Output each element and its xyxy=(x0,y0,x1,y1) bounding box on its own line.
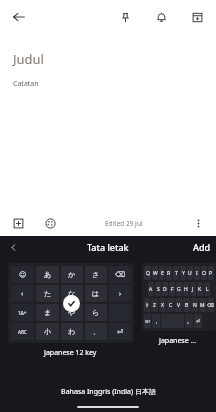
staticText: ⌫ xyxy=(115,271,125,279)
button[interactable]: Archive xyxy=(184,4,210,30)
staticText: W xyxy=(153,270,158,277)
staticText: C xyxy=(169,302,173,309)
button[interactable]: Q xyxy=(142,263,216,331)
staticText: ま xyxy=(44,308,52,317)
staticText: ⇧ xyxy=(145,302,150,308)
staticText: Y xyxy=(182,270,185,277)
staticText: わ xyxy=(68,327,76,336)
button[interactable]: Reminder xyxy=(148,4,174,30)
staticText: H xyxy=(184,286,188,293)
staticText: ☺ xyxy=(19,271,27,279)
staticText: T xyxy=(175,270,178,277)
staticText: ‹ xyxy=(21,289,24,299)
staticText: X xyxy=(161,302,164,309)
staticText: Edited 29 Jul xyxy=(105,219,143,228)
staticText: Japanese ... xyxy=(159,336,197,346)
staticText: ⏎ xyxy=(117,328,123,336)
staticText: B xyxy=(185,302,189,309)
button[interactable]: Add xyxy=(7,212,29,234)
staticText: D xyxy=(163,286,167,293)
staticText: O xyxy=(202,270,206,277)
staticText: 。 xyxy=(187,318,192,324)
staticText: 1&+ xyxy=(18,310,27,316)
staticText: さ xyxy=(92,270,100,279)
staticText: た xyxy=(44,289,52,298)
staticText: R xyxy=(167,270,171,277)
staticText: E xyxy=(161,270,164,277)
staticText: 小 xyxy=(44,327,51,336)
staticText: Judul xyxy=(13,50,44,68)
staticText: な xyxy=(68,289,76,298)
staticText: G xyxy=(177,286,181,293)
staticText: Z xyxy=(153,302,156,309)
staticText: は xyxy=(92,289,100,298)
staticText: あ xyxy=(44,270,52,279)
staticText: や xyxy=(68,308,76,317)
staticText: N xyxy=(193,302,197,309)
staticText: Add xyxy=(193,241,211,253)
staticText: I xyxy=(196,270,198,277)
staticText: ⏎ xyxy=(196,318,201,324)
staticText: ら xyxy=(92,308,100,317)
button[interactable]: ☺ xyxy=(8,263,134,343)
staticText: J xyxy=(192,286,194,293)
button[interactable]: Add xyxy=(193,241,211,253)
staticText: ， xyxy=(154,318,159,324)
staticText: V xyxy=(177,302,181,309)
staticText: 、 xyxy=(93,327,100,336)
button[interactable]: Palette xyxy=(39,212,61,234)
staticText: U xyxy=(188,270,192,277)
staticText: Bahasa Inggris (India) 日本語 xyxy=(61,387,156,397)
staticText: K xyxy=(198,286,202,293)
staticText: P xyxy=(209,270,213,277)
staticText: M xyxy=(200,302,205,309)
staticText: Japanese 12 key xyxy=(44,348,97,358)
staticText: Q xyxy=(146,270,150,277)
staticText: S xyxy=(157,286,160,293)
button[interactable]: More options xyxy=(187,212,209,234)
button[interactable]: Pin xyxy=(112,4,138,30)
staticText: Catatan xyxy=(13,79,39,89)
staticText: Tata letak xyxy=(87,241,129,253)
staticText: A xyxy=(149,286,153,293)
staticText: F xyxy=(171,286,174,293)
staticText: !#1 xyxy=(145,319,151,324)
staticText: L xyxy=(206,286,209,293)
staticText: ⌫ xyxy=(207,302,214,308)
button[interactable]: Back xyxy=(4,238,22,256)
staticText: › xyxy=(119,289,122,299)
button[interactable]: Back xyxy=(6,4,32,30)
staticText: ABC xyxy=(18,329,27,335)
staticText: か xyxy=(68,270,76,279)
